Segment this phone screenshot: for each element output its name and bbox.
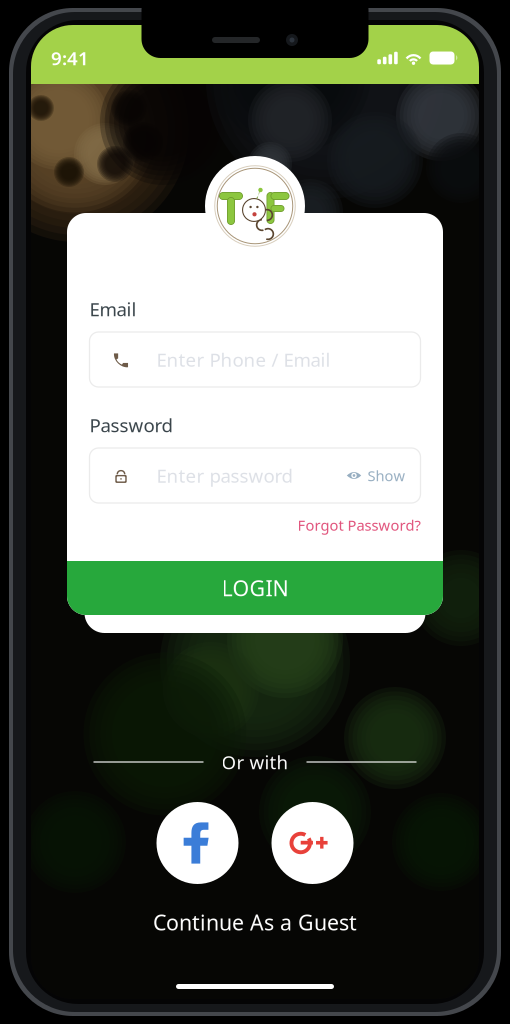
button[interactable]: Continue As a Guest: [127, 899, 383, 945]
staticText: Forgot Password?: [297, 515, 420, 535]
staticText: 9:41: [51, 46, 89, 70]
button[interactable]: LOGIN: [67, 561, 443, 615]
staticText: Show: [367, 466, 405, 485]
button[interactable]: Continue with Google Plus: [270, 802, 354, 884]
button[interactable]: Forgot Password?: [297, 514, 420, 536]
staticText: Enter Phone / Email: [156, 347, 330, 372]
staticText: LOGIN: [221, 574, 288, 602]
staticText: Email: [89, 297, 136, 321]
staticText: Or with: [221, 750, 288, 774]
staticText: Password: [89, 413, 172, 437]
staticText: Continue As a Guest: [153, 908, 357, 936]
button[interactable]: Continue with Facebook: [155, 802, 239, 884]
button[interactable]: Show: [346, 466, 405, 485]
staticText: Enter password: [156, 463, 292, 488]
